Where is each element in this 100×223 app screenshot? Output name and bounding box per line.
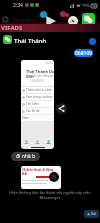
staticText: nhận quà từ chương trình (22, 182, 47, 185)
button[interactable]: Tạo lối tắt (22, 108, 54, 114)
staticText: Số điện thoại di động (22, 168, 54, 172)
staticText: Hãy làm theo hướng dẫn để (22, 179, 49, 182)
button[interactable]: Messenger (68, 16, 78, 26)
button[interactable]: Thêm vào tin nhắn (22, 87, 54, 93)
staticText: Thái Thành (14, 37, 47, 45)
button[interactable]: Xem trang cá nhân (22, 94, 54, 100)
button[interactable]: 668109 (74, 49, 93, 57)
staticText: Tìm kiếm (12, 17, 34, 24)
staticText: 14:36 (45, 61, 53, 65)
staticText: 2:34 (13, 2, 23, 9)
staticText: Thái Thành Du Mih (26, 69, 54, 79)
staticText: VIFADS (1, 24, 23, 32)
staticText: 79% (82, 3, 90, 8)
button[interactable]: WeChat (82, 13, 95, 26)
button[interactable]: Share (56, 103, 67, 114)
button[interactable]: Khác (22, 115, 54, 121)
staticText: Khác (22, 116, 29, 120)
button[interactable]: Gửi (84, 210, 99, 218)
staticText: Tìm kiếm (26, 102, 39, 106)
staticText: Nội (22, 172, 28, 176)
button[interactable]: Contact avatar (3, 35, 12, 44)
staticText: Gửi (91, 212, 96, 216)
staticText: Tạo lối tắt (26, 109, 40, 113)
staticText: Thêm vào tin nhắn (26, 88, 53, 92)
staticText: Bạn bè trên Messenger (26, 74, 54, 78)
button[interactable]: Số điện thoại di động (21, 166, 61, 189)
staticText: Xem trang cá nhân (26, 95, 53, 99)
button[interactable]: Tìm kiếm (22, 101, 54, 107)
staticText: đi nhà b (16, 153, 36, 160)
staticText: Hiện không liên lạc được với người này t… (0, 190, 100, 200)
staticText: 668109 (75, 50, 93, 57)
button[interactable]: đi nhà b (11, 152, 40, 161)
